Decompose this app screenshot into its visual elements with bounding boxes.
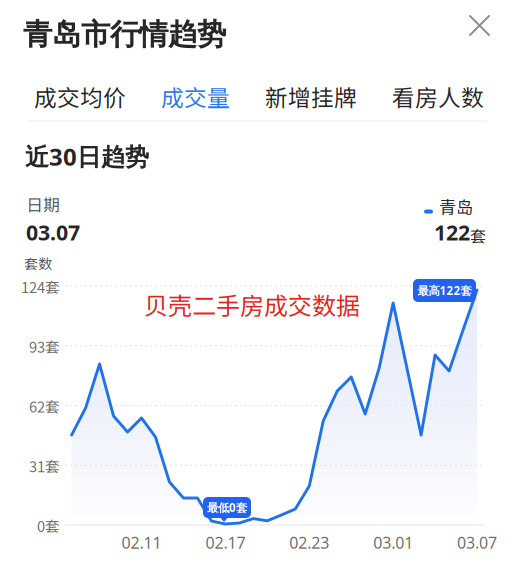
button[interactable]: 关闭: [458, 4, 501, 47]
staticText: 青岛市行情趋势: [23, 16, 226, 53]
staticText: 套数: [24, 253, 52, 273]
button[interactable]: 成交均价: [29, 75, 131, 118]
button[interactable]: 看房人数: [387, 75, 489, 118]
staticText: 青岛: [439, 194, 473, 219]
staticText: 看房人数: [392, 80, 484, 113]
staticText: 成交量: [161, 80, 230, 113]
staticText: 62套: [29, 395, 60, 417]
staticText: 124套: [21, 276, 60, 297]
staticText: 0套: [37, 515, 60, 536]
staticText: 31套: [29, 455, 60, 476]
staticText: 成交均价: [34, 80, 126, 113]
button[interactable]: 成交量: [156, 75, 235, 118]
staticText: 最高122套: [417, 283, 471, 298]
button[interactable]: 新增挂牌: [260, 75, 362, 118]
staticText: 02.11: [121, 532, 161, 553]
staticText: 贝壳二手房成交数据: [144, 287, 360, 322]
staticText: 日期: [26, 192, 60, 216]
staticText: 最低0套: [207, 500, 247, 515]
staticText: 03.07: [26, 218, 80, 246]
staticText: 02.17: [205, 532, 245, 553]
staticText: 新增挂牌: [265, 80, 357, 113]
staticText: 03.01: [373, 532, 413, 553]
staticText: 近30日趋势: [25, 140, 149, 173]
staticText: 122套: [434, 218, 486, 247]
staticText: 02.23: [289, 532, 329, 553]
staticText: 03.07: [457, 532, 497, 553]
staticText: 93套: [29, 336, 60, 357]
